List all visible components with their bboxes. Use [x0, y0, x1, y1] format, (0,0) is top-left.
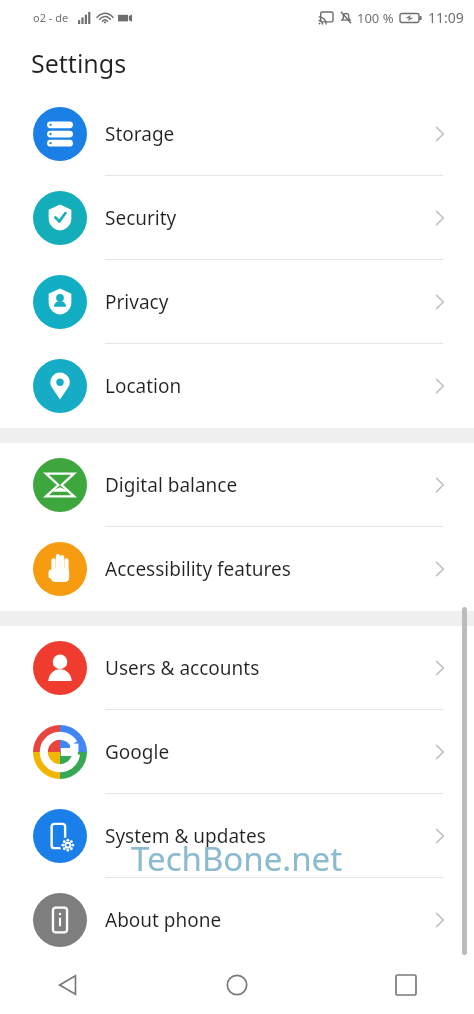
- staticText: System & updates: [105, 823, 266, 849]
- button[interactable]: Users & accounts: [0, 626, 474, 710]
- button[interactable]: Security: [0, 176, 474, 260]
- staticText: 11:09: [428, 8, 464, 27]
- button[interactable]: Recents: [378, 957, 434, 1013]
- staticText: Digital balance: [105, 472, 238, 498]
- button[interactable]: Google: [0, 710, 474, 794]
- button[interactable]: Storage: [0, 92, 474, 176]
- button[interactable]: About phone: [0, 878, 474, 962]
- button[interactable]: Back: [40, 957, 96, 1013]
- staticText: Accessibility features: [105, 556, 291, 582]
- staticText: Settings: [31, 46, 127, 80]
- staticText: Security: [105, 205, 177, 231]
- button[interactable]: Home: [209, 957, 265, 1013]
- staticText: Location: [105, 373, 182, 399]
- button[interactable]: Accessibility features: [0, 527, 474, 611]
- staticText: About phone: [105, 907, 222, 933]
- staticText: o2 - de: [33, 10, 69, 25]
- staticText: Privacy: [105, 289, 169, 315]
- button[interactable]: Privacy: [0, 260, 474, 344]
- staticText: 100 %: [357, 9, 394, 27]
- button[interactable]: Location: [0, 344, 474, 428]
- staticText: TechBone.net: [131, 836, 343, 881]
- button[interactable]: System & updates: [0, 794, 474, 878]
- staticText: Storage: [105, 121, 175, 147]
- staticText: Google: [105, 739, 170, 765]
- button[interactable]: Digital balance: [0, 443, 474, 527]
- staticText: Users & accounts: [105, 655, 260, 681]
